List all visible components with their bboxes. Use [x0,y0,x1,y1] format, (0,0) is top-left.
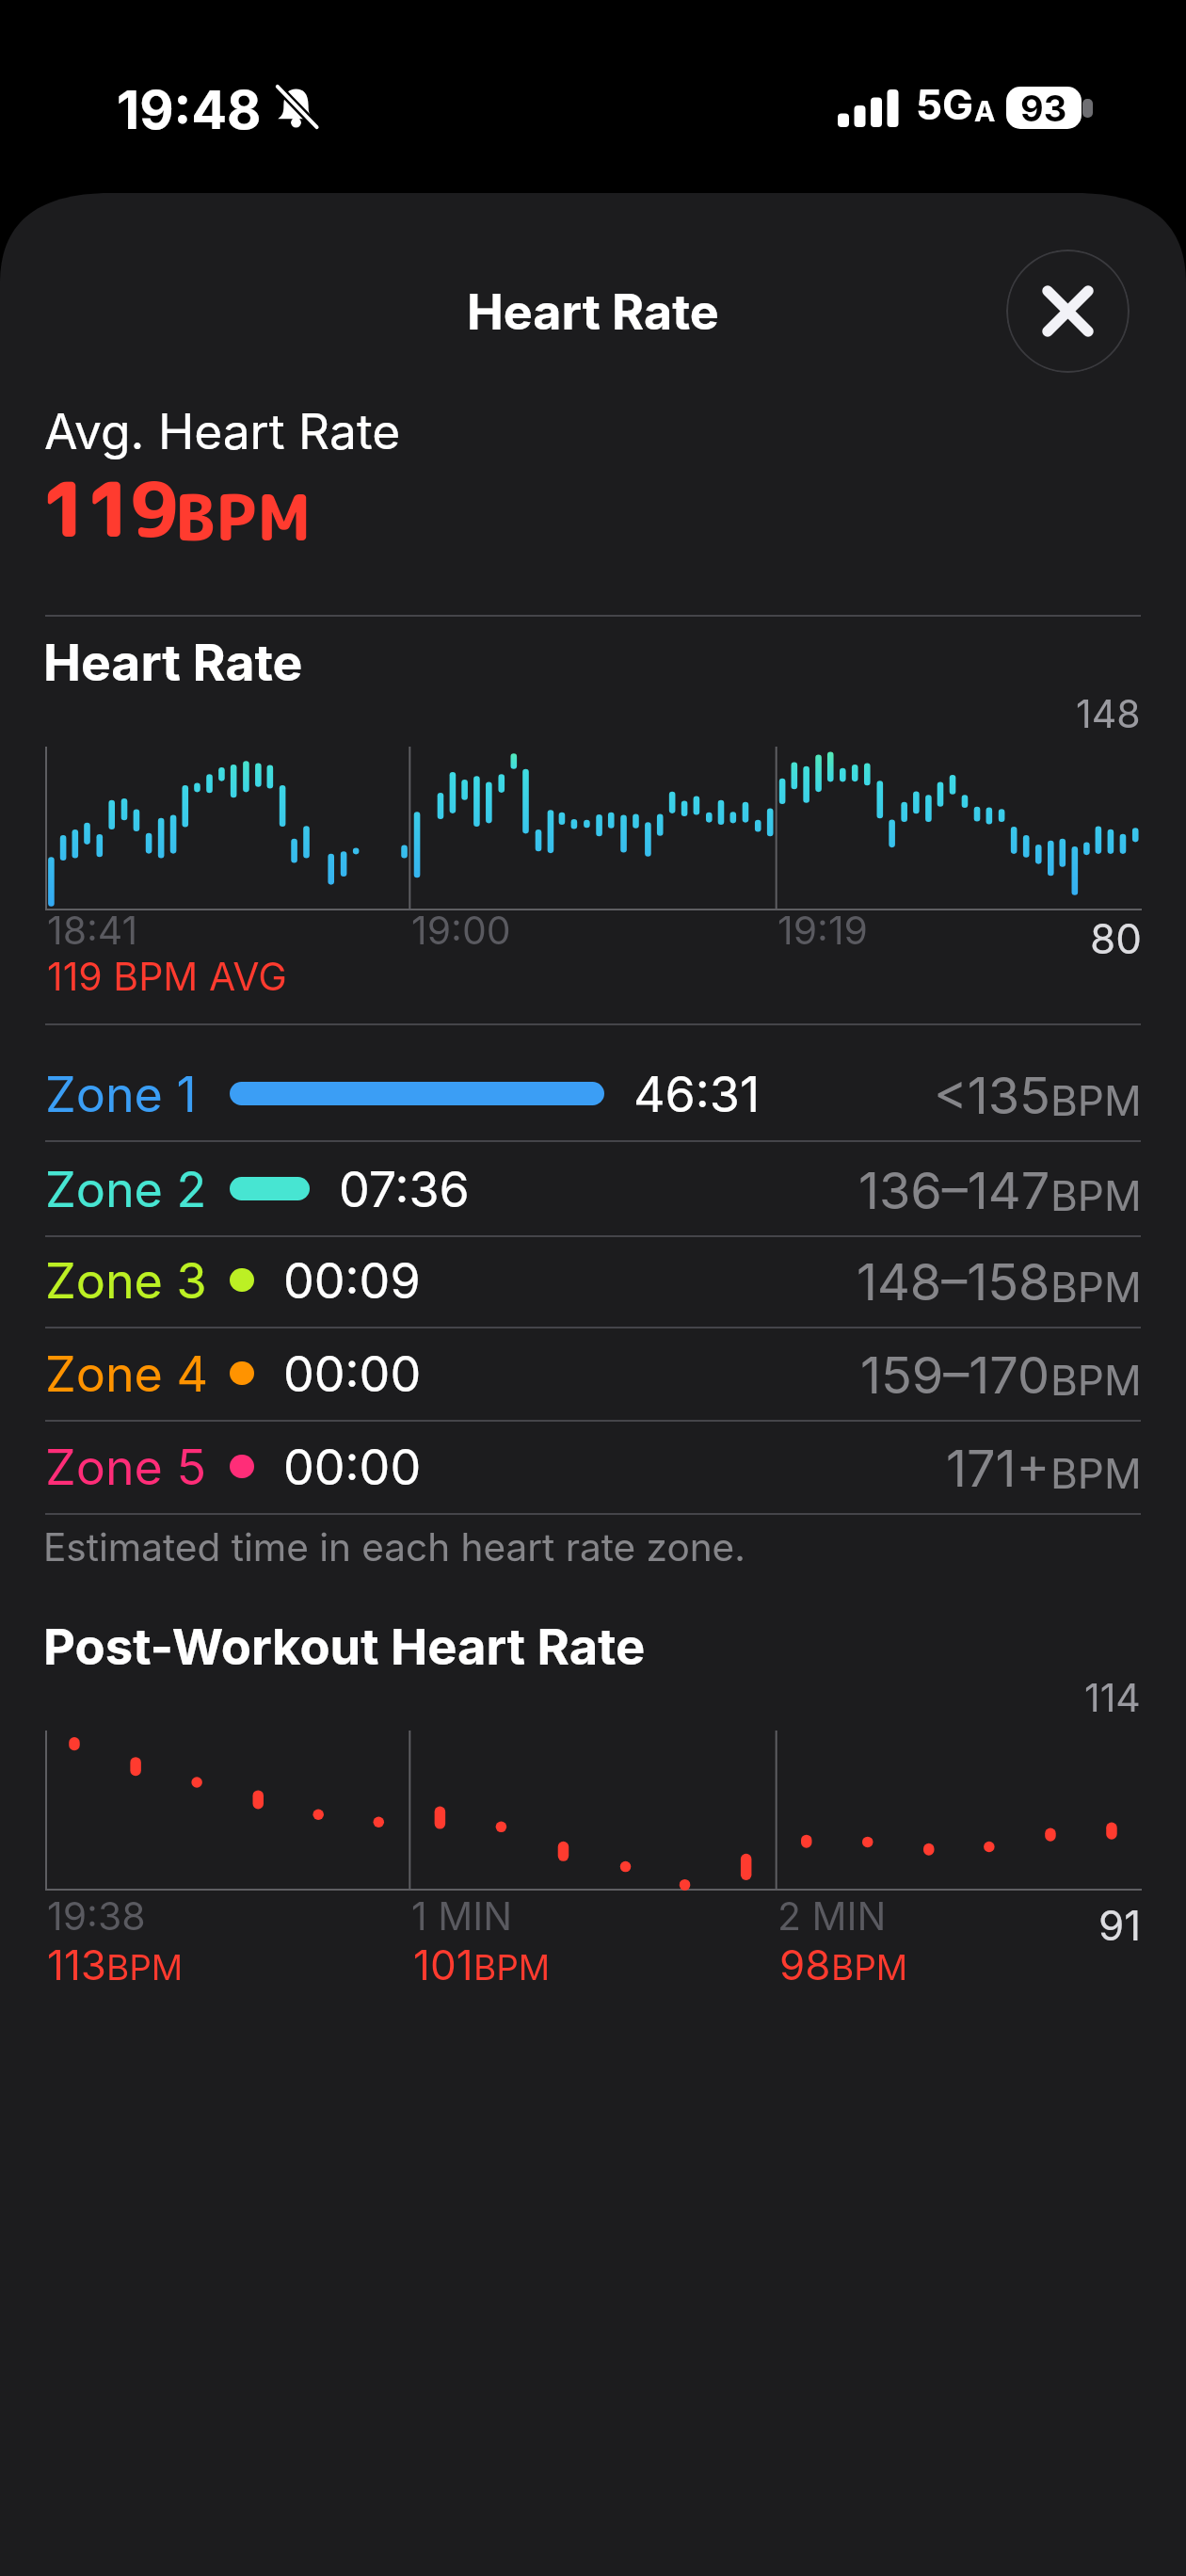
staticText: Heart Rate [43,632,303,693]
staticText: 00:09 [283,1251,421,1311]
staticText: 171+ [946,1438,1050,1499]
staticText: 91 [1098,1900,1142,1950]
button[interactable] [0,1235,1186,1327]
staticText: 19:48 [117,78,262,142]
button[interactable] [0,1327,1186,1420]
staticText: Zone 3 [45,1251,207,1311]
staticText: 148 [1076,690,1141,737]
staticText: 101 [413,1940,473,1989]
staticText: BPM [1050,1075,1142,1125]
staticText: 19:38 [47,1892,146,1940]
staticText: 46:31 [633,1065,761,1124]
staticText: Heart Rate [467,282,719,342]
staticText: <135 [934,1065,1050,1126]
staticText: Zone 5 [45,1438,207,1497]
staticText: 18:41 [47,907,138,954]
staticText: 113 [47,1940,106,1989]
staticText: BPM [106,1946,184,1988]
staticText: 136–147 [858,1160,1050,1221]
staticText: A [974,94,996,128]
staticText: 07:36 [339,1160,470,1219]
button[interactable] [0,1023,1186,1140]
staticText: 1 MIN [411,1892,513,1940]
staticText: Post-Workout Heart Rate [43,1617,646,1677]
staticText: 93 [1020,87,1067,129]
staticText: BPM [1050,1355,1142,1405]
staticText: BPM [175,473,313,560]
staticText: 80 [1090,913,1142,963]
staticText: Zone 1 [45,1065,197,1124]
button[interactable]: Close [1006,250,1130,373]
button[interactable] [0,1140,1186,1235]
staticText: BPM [1050,1170,1142,1220]
staticText: 148–158 [857,1251,1050,1312]
staticText: 98 [779,1940,831,1989]
staticText: BPM [473,1946,551,1988]
staticText: 114 [1084,1674,1141,1721]
staticText: BPM [1050,1448,1142,1498]
staticText: 00:00 [283,1344,422,1404]
staticText: Avg. Heart Rate [44,402,401,460]
staticText: 159–170 [860,1344,1050,1406]
staticText: 119 BPM AVG [47,953,287,1000]
staticText: BPM [831,1946,908,1988]
staticText: 2 MIN [777,1892,887,1940]
button[interactable] [0,1420,1186,1513]
staticText: Zone 4 [45,1344,209,1404]
staticText: 5G [916,79,974,129]
staticText: 19:00 [411,907,511,954]
staticText: 19:19 [777,907,869,954]
staticText: 00:00 [283,1438,422,1497]
staticText: Estimated time in each heart rate zone. [43,1524,745,1570]
staticText: BPM [1050,1262,1142,1312]
staticText: 119 [40,456,175,561]
staticText: Zone 2 [45,1160,207,1219]
